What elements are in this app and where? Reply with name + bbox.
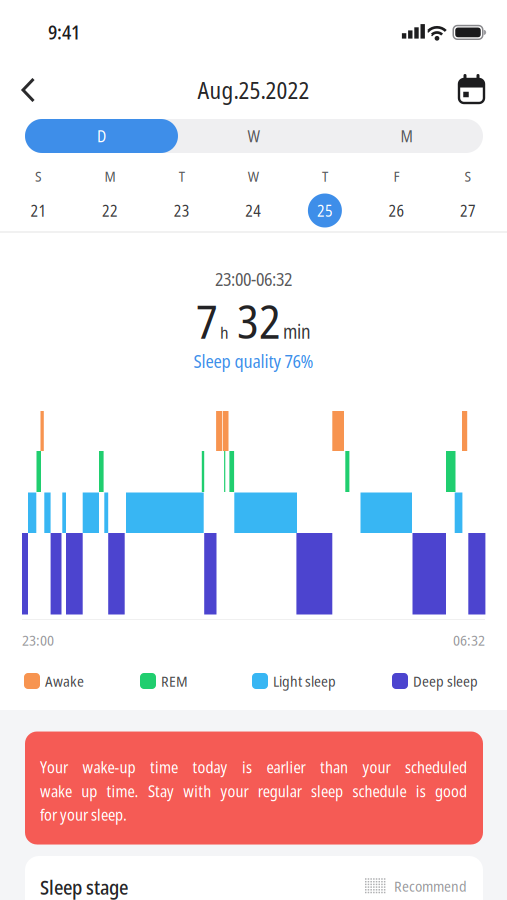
button[interactable]: 26	[374, 190, 418, 230]
staticText: Stay	[148, 780, 174, 802]
staticText: 06:32	[453, 630, 485, 650]
staticText: scheduled	[405, 756, 467, 778]
button[interactable]: Recommend	[307, 876, 467, 896]
staticText: 9:41	[48, 19, 80, 45]
staticText: than	[320, 756, 348, 778]
button[interactable]: 23	[160, 190, 204, 230]
button[interactable]: 22	[88, 190, 132, 230]
staticText: 25	[317, 200, 333, 221]
staticText: for your sleep.	[40, 804, 127, 825]
staticText: Sleep stage	[40, 873, 128, 900]
staticText: earlier	[266, 756, 305, 778]
staticText: your	[362, 756, 390, 778]
staticText: W	[248, 166, 259, 186]
staticText: time	[150, 756, 178, 778]
staticText: F	[393, 166, 399, 186]
staticText: Sleep quality 76%	[193, 349, 313, 373]
button[interactable]: 21	[16, 190, 60, 230]
staticText: sleep	[311, 780, 343, 802]
staticText: M	[105, 166, 116, 186]
staticText: 26	[388, 200, 404, 221]
button[interactable]: 25	[303, 190, 347, 230]
staticText: Aug.25.2022	[197, 74, 309, 106]
staticText: 27	[460, 200, 476, 221]
staticText: is	[416, 780, 426, 802]
staticText: wake	[40, 780, 72, 802]
staticText: M	[400, 125, 412, 147]
staticText: 23:00-06:32	[215, 267, 292, 291]
staticText: T	[179, 166, 185, 186]
button[interactable]: D	[25, 119, 178, 153]
staticText: 22	[102, 200, 118, 221]
staticText: min	[283, 318, 311, 344]
staticText: h	[220, 321, 229, 344]
staticText: 7	[196, 290, 218, 352]
staticText: Deep sleep	[413, 671, 478, 691]
button[interactable]: 24	[231, 190, 275, 230]
button[interactable]: M	[331, 119, 481, 153]
button[interactable]	[451, 67, 491, 107]
button[interactable]	[6, 68, 50, 112]
button[interactable]: W	[179, 119, 329, 153]
button[interactable]: 27	[446, 190, 490, 230]
staticText: is	[242, 756, 252, 778]
staticText: wake-up	[82, 756, 135, 778]
staticText: D	[97, 125, 106, 147]
staticText: your	[220, 780, 248, 802]
staticText: 24	[245, 200, 261, 221]
staticText: good	[435, 780, 467, 802]
staticText: schedule	[352, 780, 406, 802]
staticText: Recommend	[394, 876, 467, 896]
staticText: 23:00	[22, 630, 54, 650]
staticText: with	[183, 780, 211, 802]
staticText: W	[247, 125, 260, 147]
staticText: Your	[40, 756, 68, 778]
staticText: Awake	[45, 671, 84, 691]
staticText: time.	[107, 780, 139, 802]
staticText: REM	[161, 671, 188, 691]
staticText: up	[81, 780, 97, 802]
staticText: 21	[30, 200, 46, 221]
staticText: regular	[258, 780, 302, 802]
staticText: 32	[237, 290, 281, 352]
staticText: 23	[174, 200, 190, 221]
staticText: today	[192, 756, 227, 778]
staticText: T	[322, 166, 328, 186]
staticText: Light sleep	[273, 671, 336, 691]
staticText: S	[465, 166, 472, 186]
staticText: S	[35, 166, 42, 186]
